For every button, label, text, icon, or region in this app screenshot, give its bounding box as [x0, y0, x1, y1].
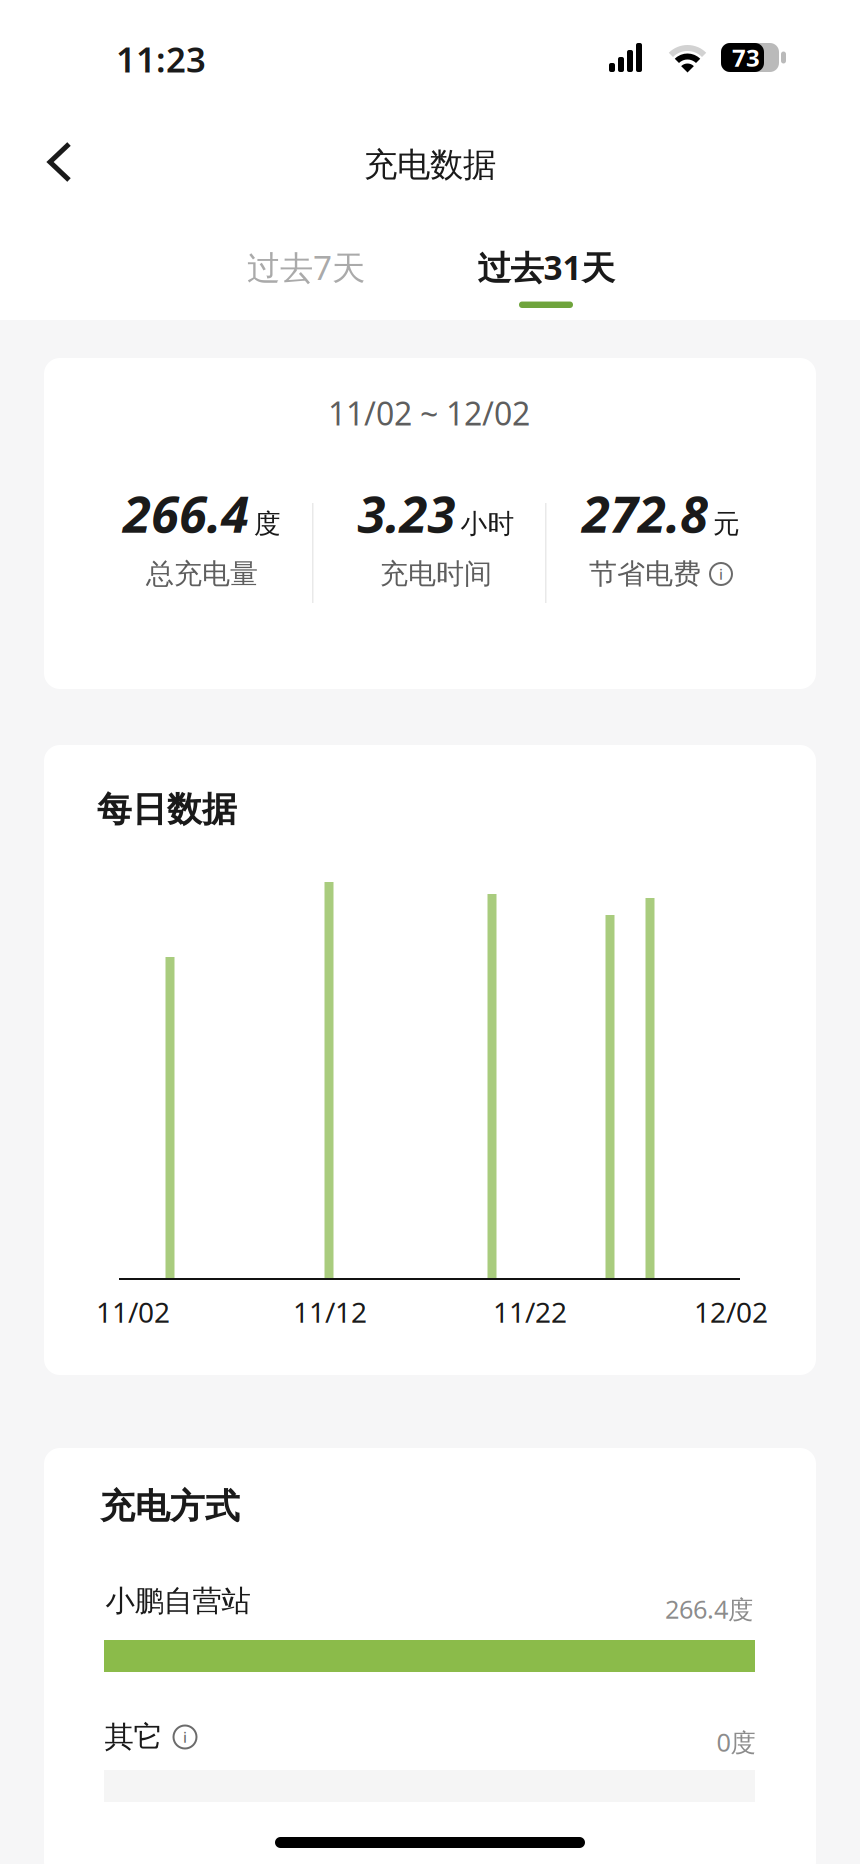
staticText: 小时	[460, 507, 514, 540]
staticText: 266.4度	[665, 1592, 753, 1626]
button[interactable]: About other charging	[172, 1724, 197, 1749]
staticText: 0度	[716, 1725, 755, 1759]
button[interactable]: 过去7天	[216, 237, 396, 297]
staticText: 3.23	[357, 479, 455, 547]
staticText: 过去31天	[477, 245, 614, 289]
staticText: 每日数据	[97, 788, 237, 831]
button[interactable]: About saved cost	[709, 562, 733, 586]
staticText: 73	[732, 42, 760, 73]
staticText: 充电时间	[380, 557, 492, 591]
staticText: 272.8	[582, 479, 708, 547]
staticText: i	[183, 1727, 187, 1747]
staticText: 总充电量	[146, 557, 258, 591]
staticText: 11/02	[96, 1293, 170, 1331]
staticText: 其它	[104, 1719, 162, 1755]
staticText: i	[719, 564, 723, 584]
staticText: 元	[713, 507, 740, 540]
staticText: 11/22	[493, 1293, 567, 1331]
button[interactable]: Back	[44, 141, 88, 185]
staticText: 充电方式	[100, 1485, 240, 1528]
staticText: 节省电费	[589, 557, 701, 591]
staticText: 过去7天	[247, 245, 365, 289]
staticText: 充电数据	[364, 144, 496, 185]
button[interactable]: 过去31天	[446, 237, 646, 297]
staticText: 11:23	[116, 36, 206, 82]
staticText: 12/02	[694, 1293, 768, 1331]
staticText: 11/02 ~ 12/02	[328, 392, 530, 434]
staticText: 度	[254, 507, 281, 540]
staticText: 小鹏自营站	[105, 1583, 250, 1619]
staticText: 11/12	[293, 1293, 367, 1331]
staticText: 266.4	[123, 479, 249, 547]
